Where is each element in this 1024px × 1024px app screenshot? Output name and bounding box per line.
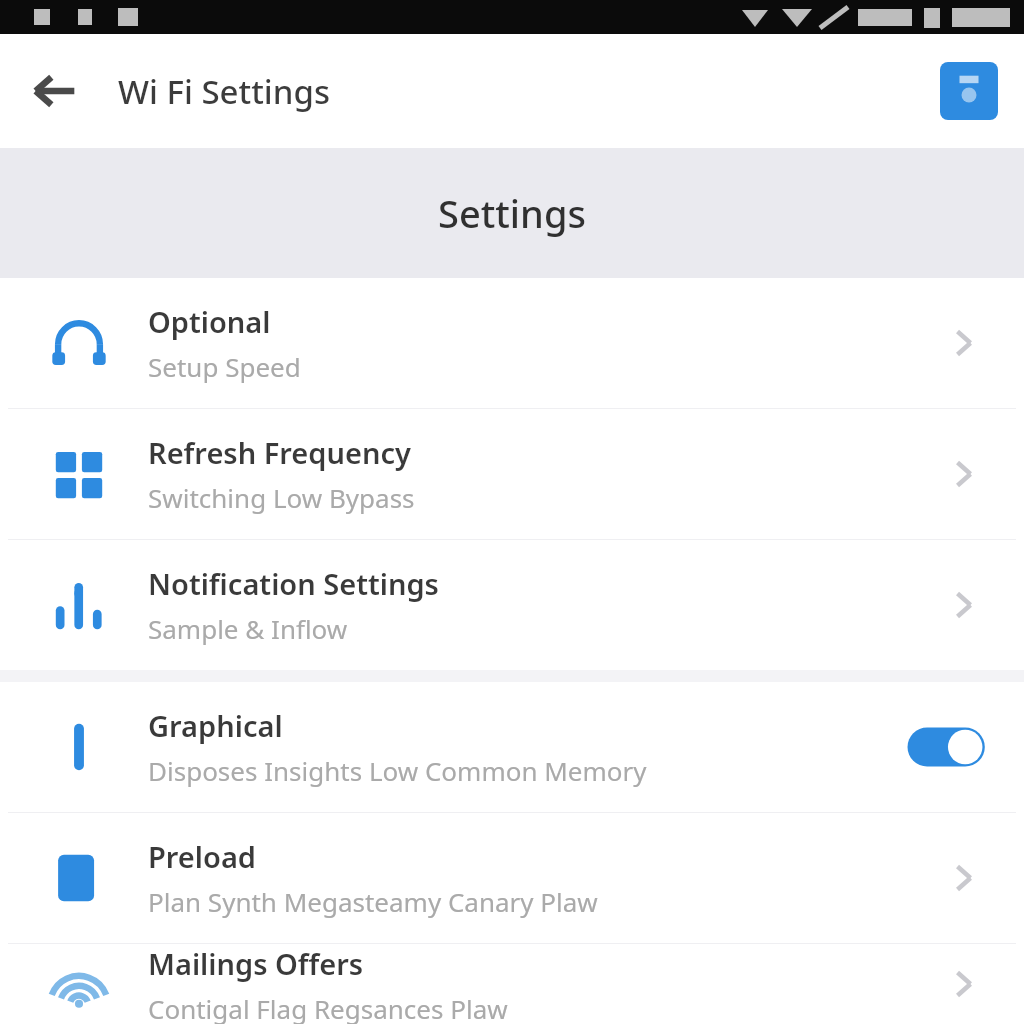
staticText: Optional [148,302,271,341]
button[interactable]: Save [940,62,998,120]
staticText: Plan Synth Megasteamy Canary Plaw [148,884,598,919]
staticText: Settings [438,187,586,239]
staticText: Graphical [148,706,283,745]
button[interactable]: Refresh Frequency [0,409,1024,539]
button[interactable]: Graphical [0,682,1024,812]
staticText: Contigal Flag Regsances Plaw [148,991,508,1024]
staticText: Mailings Offers [148,944,364,983]
staticText: Notification Settings [148,564,439,603]
button[interactable]: Graphical toggle [902,719,994,775]
staticText: Disposes Insights Low Common Memory [148,753,647,788]
button[interactable]: Preload [0,813,1024,943]
button[interactable]: Mailings Offers [0,944,1024,1024]
staticText: Switching Low Bypass [148,480,415,515]
button[interactable]: Notification Settings [0,540,1024,670]
staticText: Refresh Frequency [148,433,411,472]
staticText: Setup Speed [148,349,301,384]
staticText: Preload [148,837,257,876]
button[interactable]: Back [14,50,96,132]
staticText: Sample & Inflow [148,611,348,646]
staticText: Wi Fi Settings [118,69,330,114]
button[interactable]: Optional [0,278,1024,408]
